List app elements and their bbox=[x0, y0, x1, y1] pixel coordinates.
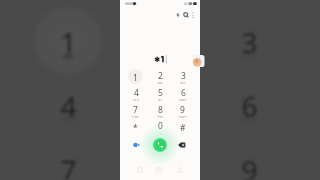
staticText: 8 bbox=[158, 104, 163, 116]
staticText: DEF bbox=[243, 51, 256, 61]
button[interactable]: 4 bbox=[128, 86, 143, 101]
staticText: 4 bbox=[60, 87, 77, 125]
staticText: 1 bbox=[60, 23, 77, 61]
staticText: + bbox=[160, 132, 162, 134]
staticText: PQRS bbox=[59, 179, 77, 180]
staticText: # bbox=[180, 122, 186, 134]
staticText: 1 bbox=[133, 72, 138, 84]
button[interactable]: Assistant bbox=[173, 10, 183, 20]
button[interactable]: 3 bbox=[175, 69, 190, 84]
staticText: 5 bbox=[158, 87, 163, 99]
staticText: 3 bbox=[181, 70, 186, 82]
button[interactable]: 2 bbox=[153, 69, 168, 84]
button[interactable]: Favourites bbox=[133, 163, 147, 177]
button[interactable]: 5 bbox=[153, 86, 168, 101]
staticText: PQRS bbox=[131, 116, 140, 118]
staticText: MNO bbox=[240, 115, 258, 125]
staticText: WXYZ bbox=[178, 116, 187, 118]
staticText: * bbox=[133, 122, 138, 134]
button[interactable]: 0 bbox=[153, 119, 168, 134]
staticText: 7 bbox=[60, 151, 77, 180]
staticText: 2 bbox=[158, 70, 163, 82]
staticText: MNO bbox=[179, 99, 187, 101]
button[interactable]: Search bbox=[181, 10, 191, 20]
staticText: 9 bbox=[180, 104, 185, 116]
staticText: DEF bbox=[180, 82, 186, 84]
staticText: GHI bbox=[62, 115, 75, 125]
staticText: ABC bbox=[157, 82, 164, 84]
staticText: 3 bbox=[241, 23, 258, 61]
button[interactable]: # bbox=[175, 119, 190, 134]
button[interactable]: 8 bbox=[153, 103, 168, 118]
button[interactable]: 7 bbox=[128, 103, 143, 118]
button[interactable]: Call bbox=[153, 138, 167, 152]
staticText: WXYZ bbox=[240, 179, 259, 180]
button[interactable]: Video call bbox=[129, 138, 143, 152]
staticText: 0 bbox=[158, 120, 163, 132]
staticText: JKL bbox=[158, 99, 163, 101]
staticText: TUV bbox=[157, 116, 164, 118]
button[interactable]: 1 bbox=[128, 69, 143, 84]
button[interactable]: More options bbox=[188, 10, 198, 20]
button[interactable]: Backspace bbox=[175, 138, 189, 152]
button[interactable]: 6 bbox=[175, 86, 190, 101]
staticText: 6 bbox=[241, 87, 258, 125]
staticText: 9 bbox=[241, 151, 258, 180]
staticText: 4 bbox=[134, 87, 139, 99]
staticText: GHI bbox=[133, 99, 139, 101]
button[interactable]: * bbox=[128, 119, 143, 134]
staticText: 7 bbox=[133, 104, 138, 116]
button[interactable]: 9 bbox=[175, 103, 190, 118]
button[interactable]: Recents bbox=[152, 163, 166, 177]
staticText: 6 bbox=[181, 87, 186, 99]
